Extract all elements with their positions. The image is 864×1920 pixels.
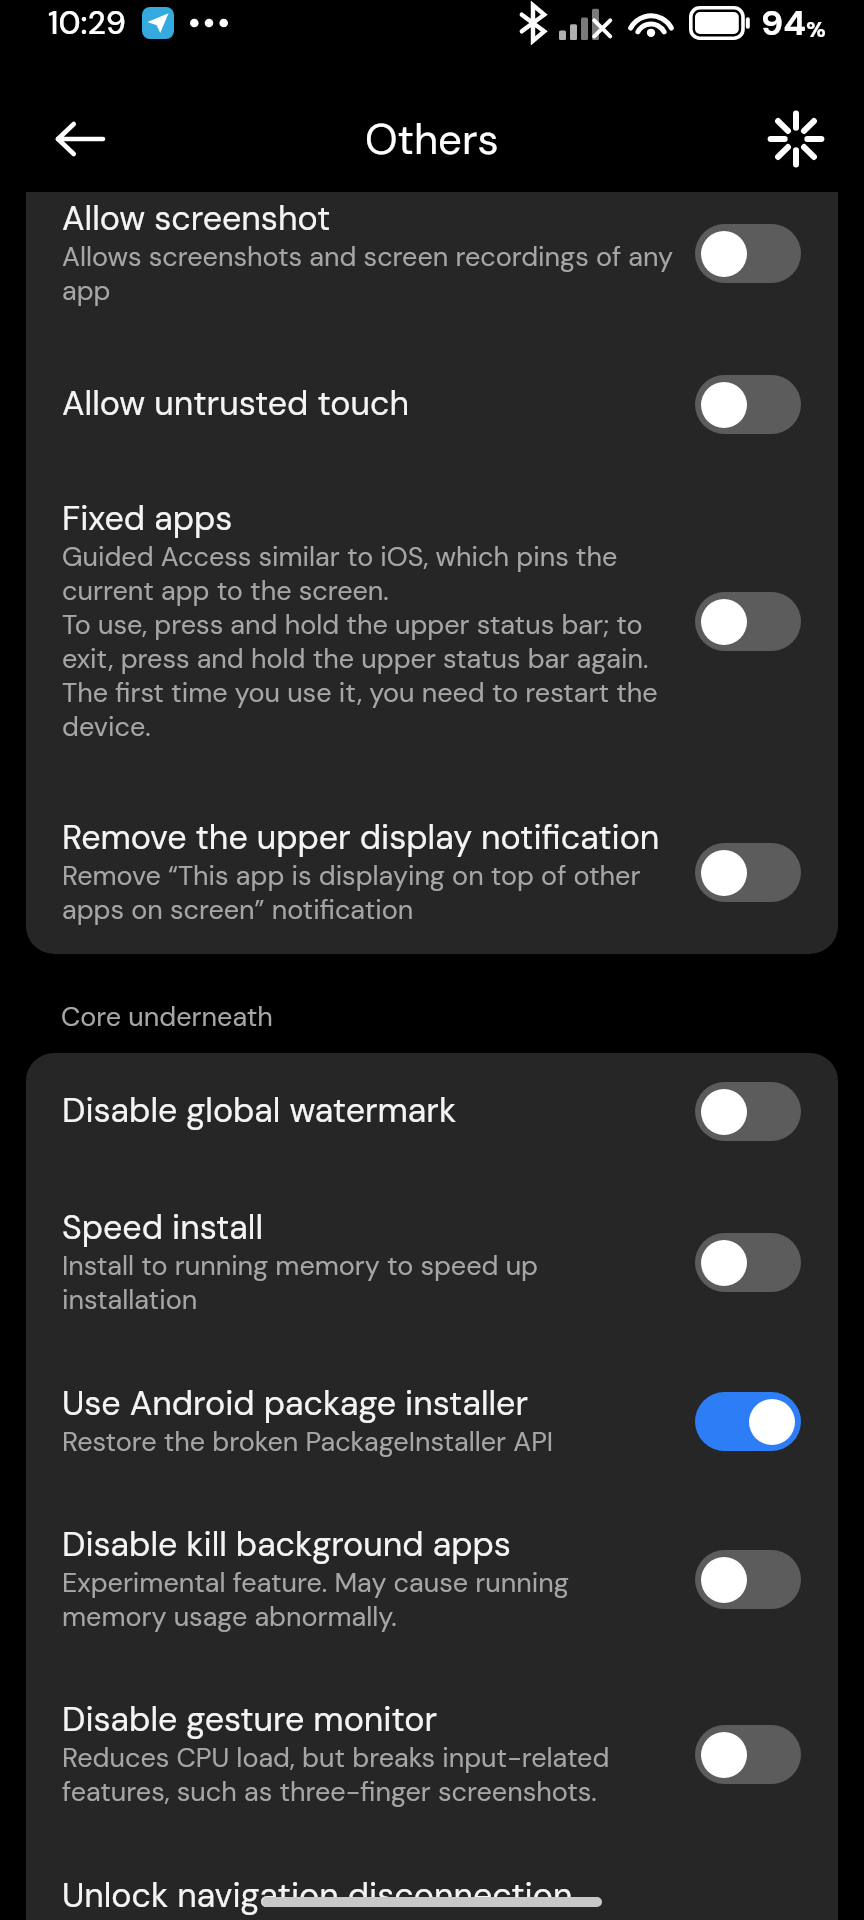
staticText: Others: [365, 112, 499, 167]
staticText: Experimental feature. May cause running …: [62, 1566, 674, 1634]
button[interactable]: Toggle off: [695, 1725, 801, 1784]
button[interactable]: Allow screenshot: [26, 161, 838, 346]
button[interactable]: Disable kill background apps: [26, 1487, 838, 1662]
staticText: 10:29: [48, 2, 126, 44]
staticText: Install to running memory to speed up in…: [62, 1249, 674, 1317]
button[interactable]: Toggle off: [695, 224, 801, 283]
button[interactable]: Allow untrusted touch: [26, 346, 838, 461]
button[interactable]: Unlock navigation disconnection: [26, 1838, 838, 1920]
button[interactable]: Toggle off: [695, 375, 801, 434]
staticText: Disable kill background apps: [62, 1526, 511, 1566]
staticText: Allow untrusted touch: [62, 385, 409, 425]
staticText: Fixed apps: [62, 500, 233, 540]
staticText: Reduces CPU load, but breaks input-relat…: [62, 1741, 674, 1809]
button[interactable]: Toggle off: [695, 592, 801, 651]
button[interactable]: Use Android package installer: [26, 1346, 838, 1487]
staticText: 94: [761, 0, 806, 46]
button[interactable]: Toggle off: [695, 1233, 801, 1292]
button[interactable]: Toggle off: [695, 843, 801, 902]
staticText: %: [806, 15, 826, 44]
button[interactable]: Back: [42, 101, 118, 177]
staticText: Remove the upper display notification: [62, 819, 660, 859]
button[interactable]: Disable global watermark: [26, 1053, 838, 1170]
button[interactable]: Toggle on: [695, 1392, 801, 1451]
button[interactable]: Fixed apps: [26, 461, 838, 780]
button[interactable]: Speed install: [26, 1170, 838, 1346]
staticText: Use Android package installer: [62, 1385, 528, 1425]
button[interactable]: Toggle off: [695, 1550, 801, 1609]
staticText: Allow screenshot: [62, 200, 331, 240]
staticText: Restore the broken PackageInstaller API: [62, 1425, 554, 1459]
staticText: Unlock navigation disconnection: [62, 1877, 573, 1917]
button[interactable]: Toggle off: [695, 1082, 801, 1141]
staticText: Core underneath: [61, 1000, 273, 1034]
staticText: Allows screenshots and screen recordings…: [62, 240, 674, 308]
staticText: Remove “This app is displaying on top of…: [62, 859, 674, 927]
staticText: Speed install: [62, 1209, 263, 1249]
staticText: Disable global watermark: [62, 1092, 457, 1132]
staticText: Disable gesture monitor: [62, 1701, 438, 1741]
button[interactable]: Remove the upper display notification: [26, 780, 838, 954]
button[interactable]: Disable gesture monitor: [26, 1662, 838, 1838]
staticText: Guided Access similar to iOS, which pins…: [62, 540, 674, 744]
button[interactable]: Loading: [764, 107, 828, 171]
